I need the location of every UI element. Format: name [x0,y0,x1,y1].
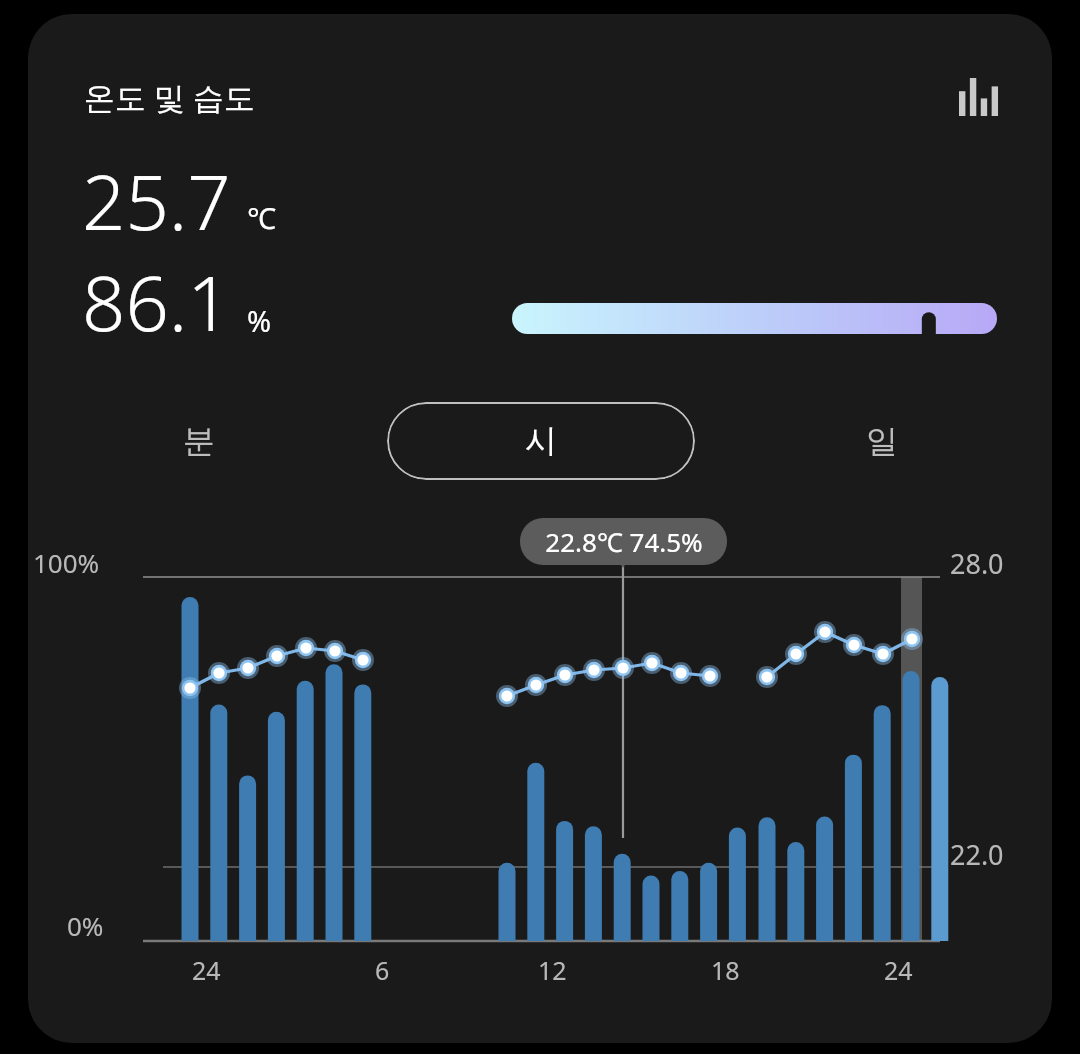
button[interactable]: Humidity level [512,303,997,334]
button[interactable]: 분 [45,402,353,480]
staticText: 25.7 [82,149,231,253]
staticText: 24 [192,953,221,987]
staticText: ℃ [247,198,276,237]
button[interactable]: 시 [387,402,695,480]
staticText: 86.1 [82,250,231,354]
button[interactable]: 일 [728,402,1036,480]
staticText: 22.8℃ 74.5% [545,524,703,559]
staticText: 28.0 [950,545,1004,582]
staticText: 24 [884,953,913,987]
staticText: % [247,301,272,340]
staticText: 22.0 [950,836,1004,873]
staticText: 0% [67,908,104,943]
staticText: 시 [525,421,557,461]
staticText: 12 [538,953,567,987]
staticText: 6 [375,953,390,987]
staticText: 분 [183,421,215,461]
staticText: 100% [33,545,100,580]
staticText: 18 [711,953,740,987]
staticText: 일 [866,421,898,461]
staticText: 온도 및 습도 [84,76,256,118]
button[interactable]: Chart [949,66,1009,126]
